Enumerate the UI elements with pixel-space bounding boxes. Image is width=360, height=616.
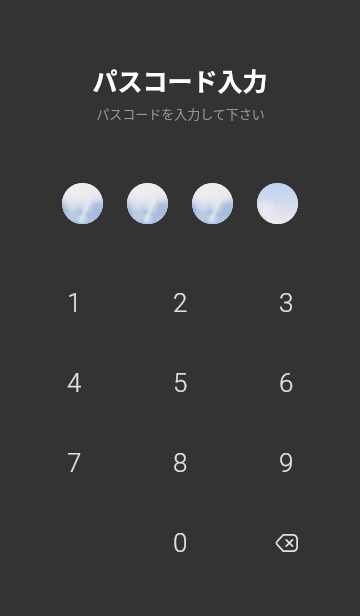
button[interactable]: 2 <box>127 263 233 343</box>
button[interactable]: 8 <box>127 423 233 503</box>
button[interactable]: 6 <box>233 343 339 423</box>
button[interactable]: 0 <box>127 503 233 583</box>
staticText: 8 <box>173 448 188 478</box>
staticText: 0 <box>173 528 188 558</box>
button[interactable]: 7 <box>21 423 127 503</box>
button[interactable]: 5 <box>127 343 233 423</box>
button[interactable]: 9 <box>233 423 339 503</box>
staticText: パスコード入力 <box>92 62 268 98</box>
button[interactable]: Delete <box>233 503 339 583</box>
staticText: 9 <box>279 448 294 478</box>
staticText: 7 <box>67 448 82 478</box>
staticText: 3 <box>279 288 294 318</box>
button[interactable]: 4 <box>21 343 127 423</box>
button[interactable]: 1 <box>21 263 127 343</box>
button[interactable]: 3 <box>233 263 339 343</box>
staticText: 5 <box>173 368 188 398</box>
staticText: 4 <box>67 368 82 398</box>
staticText: 1 <box>67 288 82 318</box>
staticText: パスコードを入力して下さい <box>96 104 265 123</box>
staticText: 2 <box>173 288 188 318</box>
staticText: 6 <box>279 368 294 398</box>
